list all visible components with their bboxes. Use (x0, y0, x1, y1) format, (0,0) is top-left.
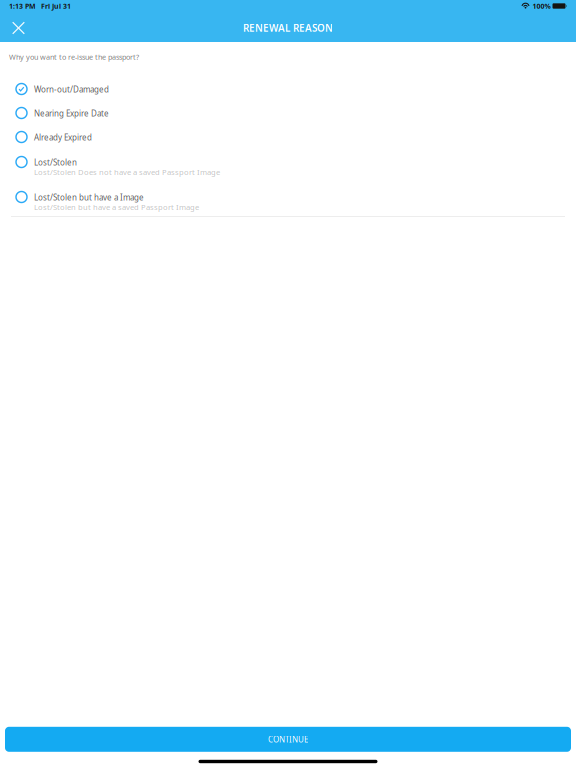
staticText: Lost/Stolen Does not have a saved Passpo… (34, 167, 220, 177)
staticText: Fri Jul 31 (41, 1, 71, 11)
button[interactable]: Lost/Stolen (0, 150, 576, 185)
button[interactable]: Nearing Expire Date (0, 101, 576, 125)
staticText: Lost/Stolen but have a saved Passport Im… (34, 202, 199, 212)
staticText: Nearing Expire Date (34, 108, 109, 119)
staticText: RENEWAL REASON (243, 21, 333, 35)
staticText: Worn-out/Damaged (34, 84, 109, 95)
staticText: Lost/Stolen but have a Image (34, 192, 144, 203)
staticText: CONTINUE (268, 734, 308, 745)
staticText: Lost/Stolen (34, 157, 77, 168)
staticText: Why you want to re-issue the passport? (9, 52, 139, 62)
staticText: 1:13 PM (9, 1, 36, 11)
button[interactable]: Worn-out/Damaged (0, 77, 576, 101)
button[interactable]: Close (6, 17, 31, 38)
staticText: Already Expired (34, 132, 92, 143)
button[interactable]: Already Expired (0, 125, 576, 150)
staticText: 100% (532, 1, 550, 11)
button[interactable]: Lost/Stolen but have a Image (0, 185, 576, 216)
button[interactable]: CONTINUE (5, 727, 571, 752)
